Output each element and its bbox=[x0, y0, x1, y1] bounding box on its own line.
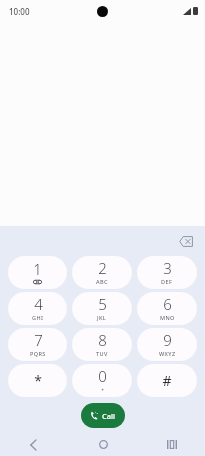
button[interactable]: 5 bbox=[72, 292, 132, 325]
button[interactable]: 8 bbox=[72, 328, 132, 361]
button[interactable]: # bbox=[137, 364, 197, 397]
staticText: GHI bbox=[32, 314, 44, 321]
button[interactable]: Recent apps bbox=[159, 433, 185, 456]
button[interactable]: Home bbox=[90, 433, 116, 456]
staticText: PQRS bbox=[30, 350, 46, 357]
staticText: WXYZ bbox=[159, 350, 176, 357]
staticText: 9 bbox=[163, 330, 172, 350]
staticText: Call bbox=[102, 411, 116, 421]
staticText: 4 bbox=[34, 294, 43, 314]
staticText: 0 bbox=[98, 366, 107, 386]
button[interactable]: Backspace bbox=[174, 229, 198, 253]
staticText: ABC bbox=[96, 278, 108, 285]
button[interactable]: 6 bbox=[137, 292, 197, 325]
button[interactable]: Back bbox=[20, 433, 46, 456]
staticText: 1 bbox=[33, 259, 42, 279]
staticText: 6 bbox=[163, 294, 172, 314]
button[interactable]: 3 bbox=[137, 256, 197, 289]
button[interactable]: 7 bbox=[8, 328, 67, 361]
staticText: 5 bbox=[98, 294, 107, 314]
staticText: JKL bbox=[97, 314, 107, 321]
button[interactable]: 0 bbox=[72, 364, 132, 397]
staticText: DEF bbox=[161, 278, 173, 285]
staticText: 3 bbox=[163, 258, 172, 278]
staticText: * bbox=[34, 371, 42, 390]
button[interactable]: 4 bbox=[8, 292, 67, 325]
staticText: + bbox=[101, 386, 105, 394]
staticText: 8 bbox=[98, 330, 107, 350]
button[interactable]: * bbox=[8, 364, 67, 397]
button[interactable]: 2 bbox=[72, 256, 132, 289]
staticText: 2 bbox=[98, 258, 107, 278]
staticText: TUV bbox=[96, 350, 108, 357]
staticText: 7 bbox=[34, 330, 43, 350]
staticText: MNO bbox=[160, 314, 175, 321]
staticText: # bbox=[162, 371, 172, 390]
button[interactable]: 9 bbox=[137, 328, 197, 361]
button[interactable]: Call bbox=[81, 403, 125, 428]
staticText: 10:00 bbox=[9, 6, 30, 17]
button[interactable]: 1 bbox=[8, 256, 67, 289]
